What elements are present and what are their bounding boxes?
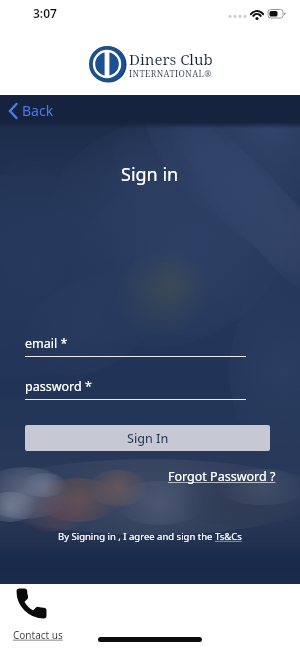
button[interactable]: Forgot Password ? [168,468,276,485]
staticText: Diners Club [129,49,213,69]
staticText: Back [22,101,54,120]
staticText: email * [25,335,68,352]
button[interactable]: Back [4,97,58,124]
staticText: password * [25,378,92,395]
staticText: Sign in [121,162,179,187]
staticText: 3:07 [33,5,57,21]
button[interactable] [8,584,70,646]
staticText: INTERNATIONAL® [129,68,212,80]
staticText: Forgot Password ? [168,468,276,485]
button[interactable]: Contact us [13,628,63,642]
button[interactable]: Sign In [25,425,270,451]
staticText: Sign In [127,430,169,447]
staticText: By Signing in , I agree and sign the Ts&… [58,530,242,543]
